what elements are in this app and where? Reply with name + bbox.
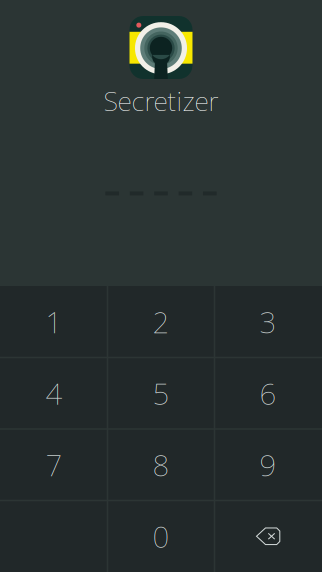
staticText: 8 <box>152 445 169 484</box>
staticText: 4 <box>45 374 62 413</box>
staticText: 2 <box>152 302 169 341</box>
button[interactable]: 2 <box>107 286 214 357</box>
staticText: 1 <box>45 302 62 341</box>
staticText: 6 <box>259 374 276 413</box>
button[interactable]: 6 <box>214 357 321 429</box>
button[interactable]: 4 <box>0 357 107 429</box>
button[interactable]: 7 <box>0 429 107 500</box>
staticText: 5 <box>152 374 169 413</box>
staticText: 0 <box>152 517 169 556</box>
staticText: 3 <box>259 302 276 341</box>
button[interactable]: 1 <box>0 286 107 357</box>
button[interactable]: Delete <box>214 500 321 572</box>
button[interactable]: 9 <box>214 429 321 500</box>
staticText: Secretizer <box>103 83 218 118</box>
button[interactable]: 5 <box>107 357 214 429</box>
staticText: 7 <box>45 445 62 484</box>
button[interactable]: 8 <box>107 429 214 500</box>
button[interactable]: 0 <box>107 500 214 572</box>
staticText: 9 <box>259 445 276 484</box>
button[interactable]: 3 <box>214 286 321 357</box>
